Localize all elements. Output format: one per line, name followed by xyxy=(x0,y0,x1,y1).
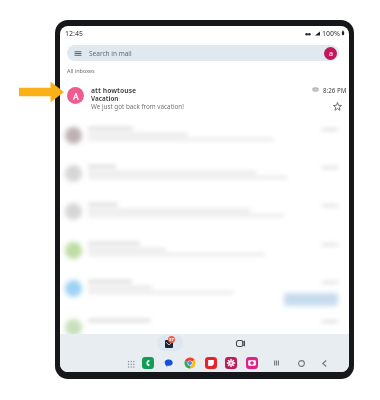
staticText: 37 xyxy=(169,337,174,343)
button[interactable]: Keep xyxy=(205,357,217,369)
button[interactable]: Messages xyxy=(163,357,175,369)
staticText: We just got back from vacation! xyxy=(91,102,184,111)
button[interactable]: Mail xyxy=(157,335,183,351)
button[interactable]: Camera xyxy=(246,357,258,369)
button[interactable]: Chrome xyxy=(184,357,196,369)
button[interactable]: Phone xyxy=(142,357,154,369)
staticText: att howtouse xyxy=(91,86,137,95)
button[interactable] xyxy=(60,313,349,351)
button[interactable]: Back xyxy=(318,357,330,369)
staticText: Vacation xyxy=(91,94,119,103)
staticText: 100% xyxy=(322,29,340,37)
other: Pointer arrow xyxy=(19,81,64,103)
button[interactable]: Star xyxy=(332,101,343,112)
button[interactable] xyxy=(60,274,349,312)
button[interactable]: Account xyxy=(324,47,337,60)
staticText: a xyxy=(329,49,333,59)
button[interactable]: Meet xyxy=(227,335,253,351)
button[interactable]: Recents xyxy=(270,357,282,369)
button[interactable] xyxy=(60,197,349,235)
button[interactable]: Apps xyxy=(127,360,136,369)
button[interactable]: A xyxy=(60,79,349,114)
staticText: All inboxes xyxy=(67,67,95,74)
button[interactable]: Flower xyxy=(225,357,237,369)
staticText: 12:45 xyxy=(65,29,83,39)
button[interactable]: Search in mail xyxy=(67,45,339,61)
staticText: Search in mail xyxy=(89,49,132,58)
staticText: 8:26 PM xyxy=(323,86,347,94)
button[interactable]: Home xyxy=(295,357,307,369)
button[interactable] xyxy=(60,121,349,159)
button[interactable] xyxy=(60,236,349,274)
staticText: A xyxy=(73,90,79,102)
button[interactable] xyxy=(60,159,349,197)
